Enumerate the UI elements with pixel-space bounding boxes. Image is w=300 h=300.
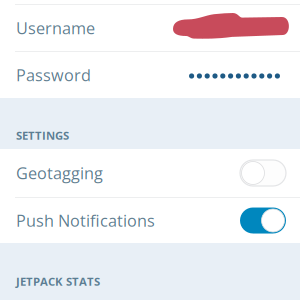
staticText: JETPACK STATS — [16, 274, 100, 289]
button[interactable]: Password — [0, 52, 300, 98]
button[interactable]: Username — [0, 5, 300, 51]
staticText: SETTINGS — [16, 128, 69, 143]
button[interactable]: Push Notifications — [0, 198, 300, 243]
button[interactable]: Geotagging — [0, 149, 300, 197]
staticText: Username — [16, 17, 95, 39]
staticText: Password — [16, 64, 91, 86]
staticText: Push Notifications — [16, 209, 155, 232]
staticText: Geotagging — [16, 162, 103, 184]
